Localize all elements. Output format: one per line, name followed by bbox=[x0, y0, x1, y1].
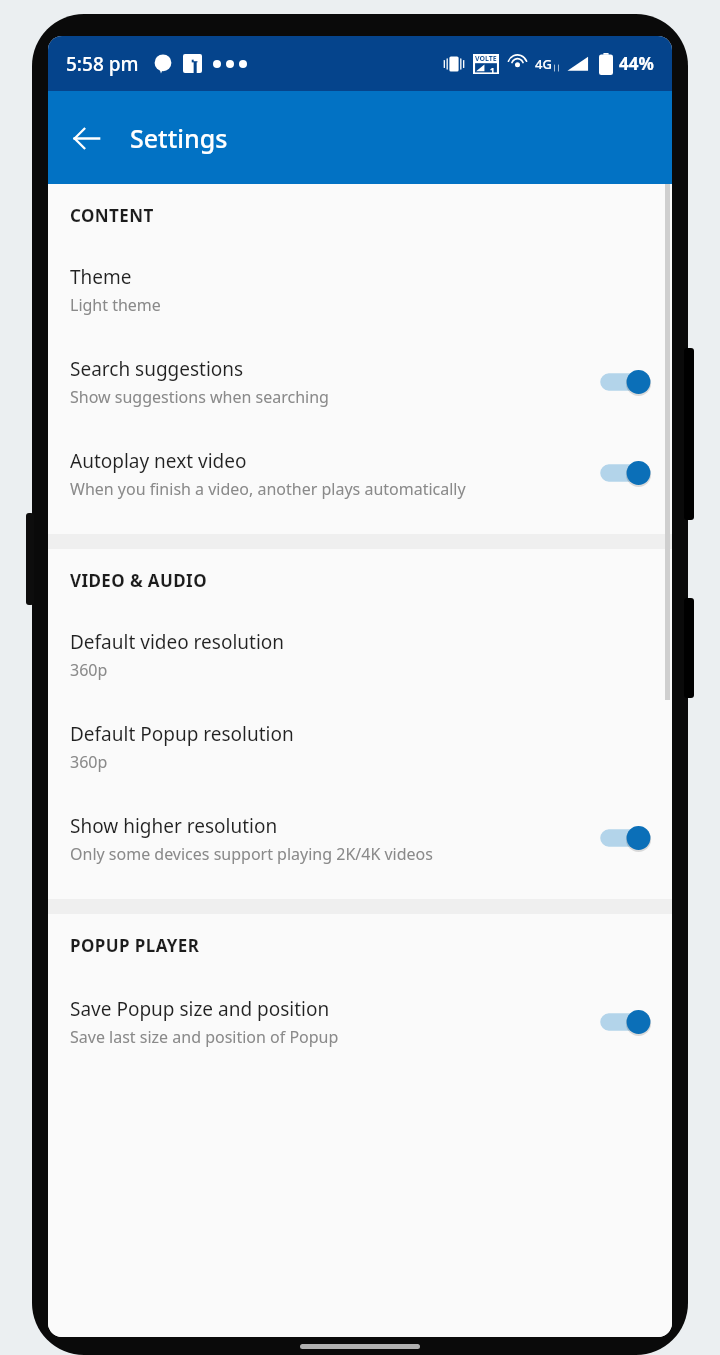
button[interactable]: Autoplay next video bbox=[48, 428, 672, 518]
staticText: Show higher resolution bbox=[70, 813, 278, 839]
button[interactable]: Search suggestions bbox=[48, 336, 672, 428]
button[interactable]: Back bbox=[58, 110, 114, 166]
staticText: When you finish a video, another plays a… bbox=[70, 478, 466, 500]
staticText: Light theme bbox=[70, 294, 161, 316]
button[interactable]: Toggle bbox=[598, 455, 654, 491]
staticText: Theme bbox=[70, 264, 132, 290]
button[interactable]: Toggle bbox=[598, 820, 654, 856]
staticText: Only some devices support playing 2K/4K … bbox=[70, 843, 433, 865]
staticText: POPUP PLAYER bbox=[70, 934, 200, 957]
staticText: 360p bbox=[70, 751, 108, 773]
staticText: CONTENT bbox=[70, 204, 154, 227]
staticText: Settings bbox=[130, 121, 228, 155]
staticText: 44% bbox=[619, 52, 654, 75]
staticText: VOLTE bbox=[475, 54, 497, 64]
button[interactable]: Default Popup resolution bbox=[48, 701, 672, 793]
staticText: 360p bbox=[70, 659, 108, 681]
staticText: 5:58 pm bbox=[66, 51, 139, 77]
staticText: VIDEO & AUDIO bbox=[70, 569, 207, 592]
button[interactable]: Show higher resolution bbox=[48, 793, 672, 883]
button[interactable]: Theme bbox=[48, 246, 672, 336]
staticText: Search suggestions bbox=[70, 356, 244, 382]
staticText: Show suggestions when searching bbox=[70, 386, 329, 408]
staticText: Autoplay next video bbox=[70, 448, 247, 474]
button[interactable]: Default video resolution bbox=[48, 611, 672, 701]
button[interactable]: Toggle bbox=[598, 1004, 654, 1040]
staticText: Save Popup size and position bbox=[70, 996, 330, 1022]
staticText: 4G bbox=[535, 55, 552, 73]
staticText: Save last size and position of Popup bbox=[70, 1026, 339, 1048]
staticText: Default video resolution bbox=[70, 629, 285, 655]
staticText: 1 bbox=[490, 65, 495, 74]
button[interactable]: Save Popup size and position bbox=[48, 976, 672, 1068]
button[interactable]: Toggle bbox=[598, 364, 654, 400]
staticText: Default Popup resolution bbox=[70, 721, 294, 747]
